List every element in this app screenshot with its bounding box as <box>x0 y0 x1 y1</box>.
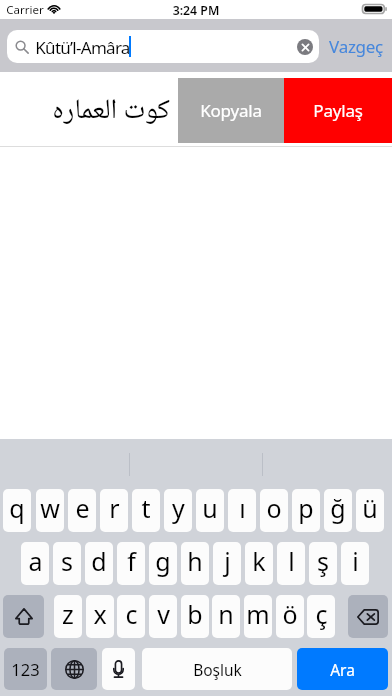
button[interactable]: 123 <box>4 648 47 690</box>
staticText: s <box>61 544 73 578</box>
staticText: f <box>127 544 136 578</box>
button[interactable]: i <box>341 542 369 585</box>
staticText: 123 <box>11 658 40 680</box>
button[interactable]: ı <box>228 489 256 532</box>
staticText: v <box>157 597 170 631</box>
button[interactable]: f <box>117 542 145 585</box>
staticText: h <box>187 544 203 578</box>
staticText: ı <box>239 491 246 525</box>
button[interactable]: e <box>68 489 96 532</box>
button[interactable]: Dictation <box>102 648 135 690</box>
staticText: Kopyala <box>200 99 262 122</box>
staticText: w <box>40 491 60 525</box>
button[interactable]: Boşluk <box>142 648 292 690</box>
staticText: m <box>246 597 270 631</box>
staticText: j <box>224 544 231 578</box>
button[interactable]: l <box>277 542 305 585</box>
button[interactable]: a <box>21 542 49 585</box>
button[interactable]: j <box>213 542 241 585</box>
button[interactable]: k <box>245 542 273 585</box>
button[interactable]: x <box>86 595 114 638</box>
staticText: n <box>218 597 234 631</box>
staticText: a <box>28 544 43 578</box>
button[interactable]: Switch keyboard <box>51 648 97 690</box>
button[interactable]: o <box>260 489 288 532</box>
button[interactable]: ç <box>307 595 335 638</box>
button[interactable]: Backspace <box>348 595 388 638</box>
staticText: Paylaş <box>313 99 363 122</box>
button[interactable]: v <box>149 595 177 638</box>
button[interactable]: n <box>212 595 240 638</box>
staticText: d <box>91 544 107 578</box>
button[interactable]: t <box>132 489 160 532</box>
staticText: k <box>252 544 266 578</box>
staticText: Ara <box>330 659 355 680</box>
button[interactable]: s <box>53 542 81 585</box>
button[interactable]: Kopyala <box>178 78 284 143</box>
staticText: ö <box>282 597 298 631</box>
staticText: p <box>298 491 314 525</box>
button[interactable]: Shift <box>3 595 44 638</box>
button[interactable]: d <box>85 542 113 585</box>
button[interactable]: g <box>149 542 177 585</box>
button[interactable]: m <box>244 595 272 638</box>
button[interactable]: ü <box>356 489 384 532</box>
button[interactable]: h <box>181 542 209 585</box>
button[interactable]: r <box>100 489 128 532</box>
staticText: كوت العماره <box>52 88 170 136</box>
staticText: u <box>202 491 218 525</box>
staticText: Boşluk <box>193 659 242 680</box>
staticText: i <box>352 544 359 578</box>
button[interactable]: b <box>181 595 209 638</box>
staticText: l <box>288 544 295 578</box>
staticText: ş <box>317 544 329 578</box>
staticText: e <box>75 491 90 525</box>
button[interactable]: Clear text <box>297 39 313 55</box>
button[interactable]: q <box>3 489 31 532</box>
staticText: g <box>155 544 171 578</box>
staticText: q <box>9 491 25 525</box>
button[interactable]: c <box>117 595 145 638</box>
staticText: Vazgeç <box>329 35 383 58</box>
button[interactable]: ş <box>309 542 337 585</box>
button[interactable]: ö <box>276 595 304 638</box>
staticText: c <box>125 597 138 631</box>
staticText: z <box>62 597 74 631</box>
staticText: ç <box>315 597 328 631</box>
button[interactable]: z <box>54 595 82 638</box>
staticText: b <box>187 597 203 631</box>
staticText: Kûtü’l-Amâra <box>35 36 130 59</box>
staticText: o <box>266 491 282 525</box>
staticText: Carrier <box>6 2 44 18</box>
staticText: r <box>109 491 120 525</box>
button[interactable]: ğ <box>324 489 352 532</box>
button[interactable]: y <box>164 489 192 532</box>
button[interactable]: p <box>292 489 320 532</box>
staticText: y <box>172 491 185 525</box>
button[interactable]: Paylaş <box>284 78 392 143</box>
button[interactable]: Vazgeç <box>326 30 386 63</box>
staticText: ü <box>362 491 378 525</box>
staticText: t <box>141 491 151 525</box>
button[interactable]: Ara <box>297 648 388 690</box>
button[interactable]: كوت العماره <box>0 78 178 143</box>
staticText: x <box>93 597 107 631</box>
button[interactable]: Kûtü’l-Amâra <box>7 30 319 63</box>
button[interactable]: u <box>196 489 224 532</box>
button[interactable]: w <box>36 489 64 532</box>
staticText: 3:24 PM <box>0 2 392 19</box>
staticText: ğ <box>330 491 346 525</box>
